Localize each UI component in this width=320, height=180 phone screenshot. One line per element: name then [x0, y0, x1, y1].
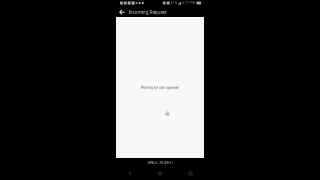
- staticText: Waiting for user approval: [141, 85, 179, 89]
- staticText: Incoming Request: [129, 9, 167, 15]
- button[interactable]: CANCEL REQUEST: [114, 158, 206, 167]
- button[interactable]: Home: [145, 167, 175, 180]
- button[interactable]: Recent apps: [175, 167, 206, 180]
- staticText: 41%: [171, 1, 177, 5]
- staticText: 4:17 PM: [182, 1, 195, 5]
- staticText: CANCEL REQUEST: [146, 160, 173, 165]
- button[interactable]: Back: [119, 8, 125, 16]
- button[interactable]: Back: [114, 167, 145, 180]
